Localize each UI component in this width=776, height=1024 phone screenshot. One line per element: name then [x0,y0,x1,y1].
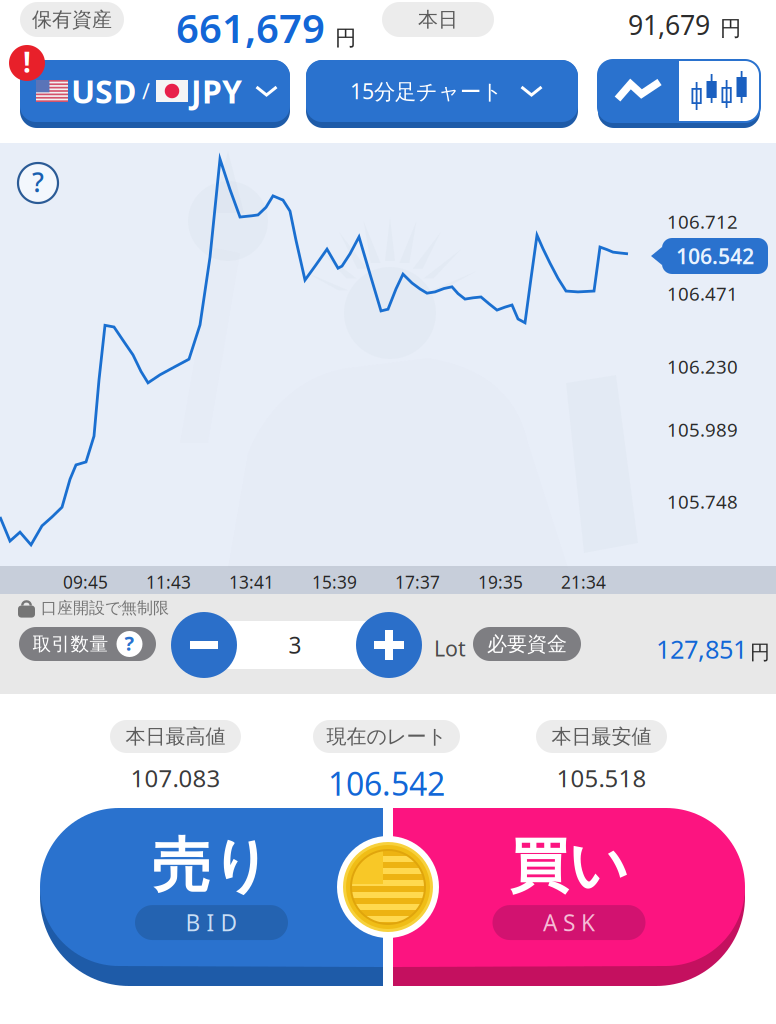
staticText: 口座開設で無制限 [41,598,169,618]
staticText: 必要資金 [487,632,567,656]
button[interactable]: Decrease lot [171,612,237,678]
staticText: 21:34 [561,570,606,593]
staticText: USD [71,70,136,112]
staticText: 現在のレート [326,724,446,749]
staticText: 円 [335,25,356,51]
button[interactable]: Chart type [598,60,760,128]
staticText: 15:39 [312,570,357,593]
staticText: 105.518 [556,762,646,794]
staticText: 円 [720,15,741,41]
button[interactable]: 買い [393,808,745,986]
staticText: 106.712 [667,209,738,234]
staticText: 買い [509,830,628,902]
staticText: 円 [750,640,770,665]
staticText: / [136,77,156,105]
staticText: 15分足チャート [350,77,503,105]
staticText: A S K [543,907,595,938]
button[interactable]: Increase lot [356,612,422,678]
staticText: 106.230 [667,354,738,379]
staticText: JPY [191,70,242,112]
button[interactable]: USD [20,60,290,128]
staticText: 106.542 [676,242,754,270]
staticText: 91,679 [628,7,710,42]
staticText: 09:45 [63,570,108,593]
staticText: 106.471 [667,281,738,306]
staticText: ? [32,164,44,200]
staticText: 取引数量 [32,632,108,655]
staticText: 本日 [418,7,458,32]
button[interactable]: 売り [40,808,383,986]
staticText: 17:37 [395,570,440,593]
button[interactable]: Help [18,163,58,203]
staticText: Lot [434,634,466,662]
staticText: 13:41 [229,570,274,593]
staticText: 11:43 [146,570,191,593]
staticText: B I D [185,907,237,938]
button[interactable]: 15分足チャート [306,60,578,128]
staticText: ! [23,43,31,81]
staticText: ? [124,630,134,656]
staticText: 本日最高値 [125,724,225,749]
staticText: 売り [152,830,271,902]
staticText: 本日最安値 [551,724,651,749]
staticText: 19:35 [478,570,523,593]
staticText: 107.083 [130,762,220,794]
staticText: 106.542 [328,762,445,804]
staticText: 3 [288,630,301,660]
button[interactable]: 必要資金 [473,627,581,661]
staticText: 保有資産 [32,7,112,32]
staticText: 105.989 [667,417,738,442]
button[interactable]: 取引数量 [19,627,156,661]
staticText: 127,851 [656,632,747,666]
staticText: 661,679 [176,1,325,54]
staticText: 105.748 [667,489,738,514]
